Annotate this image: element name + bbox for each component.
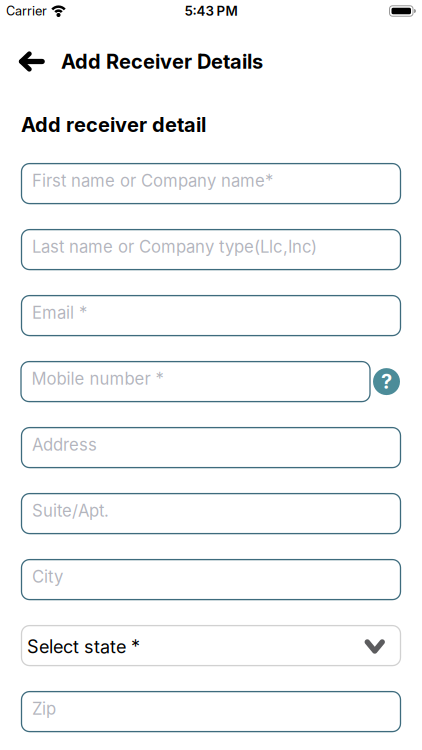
staticText: 5:43 PM xyxy=(184,3,237,19)
staticText: Add Receiver Details xyxy=(61,50,263,73)
staticText: Mobile number * xyxy=(31,369,163,388)
button[interactable]: Mobile number * xyxy=(21,362,370,402)
staticText: First name or Company name* xyxy=(32,171,273,190)
button[interactable]: Suite/Apt. xyxy=(21,494,400,534)
staticText: Select state * xyxy=(27,636,140,657)
button[interactable]: Back xyxy=(17,51,45,72)
staticText: ? xyxy=(381,370,392,393)
button[interactable]: Select state * xyxy=(21,626,400,666)
button[interactable]: First name or Company name* xyxy=(21,164,400,204)
staticText: Email * xyxy=(32,303,87,322)
staticText: Add receiver detail xyxy=(21,113,206,137)
button[interactable]: Email * xyxy=(21,296,400,336)
button[interactable]: Last name or Company type(Llc,Inc) xyxy=(21,230,400,270)
button[interactable]: Address xyxy=(21,428,400,468)
button[interactable]: Help xyxy=(373,368,400,395)
staticText: City xyxy=(32,567,63,586)
staticText: Suite/Apt. xyxy=(32,501,109,520)
staticText: Zip xyxy=(32,699,56,718)
button[interactable]: City xyxy=(21,560,400,600)
button[interactable]: Zip xyxy=(21,692,400,732)
staticText: Last name or Company type(Llc,Inc) xyxy=(32,237,317,256)
staticText: Carrier xyxy=(6,3,47,18)
staticText: Address xyxy=(32,435,97,454)
